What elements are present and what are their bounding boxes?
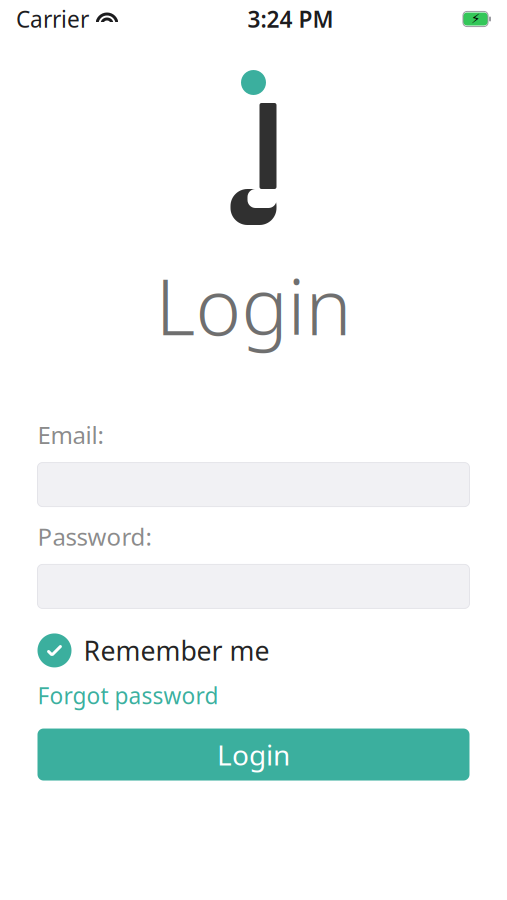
- staticText: Carrier: [16, 4, 89, 34]
- staticText: Login: [217, 736, 290, 773]
- staticText: Password:: [37, 521, 151, 552]
- staticText: Forgot password: [37, 680, 218, 710]
- button[interactable]: Forgot password: [37, 676, 218, 714]
- staticText: ⚡︎: [471, 11, 480, 26]
- staticText: 3:24 PM: [247, 4, 333, 34]
- button[interactable]: Login: [37, 728, 469, 780]
- staticText: Login: [155, 254, 351, 357]
- button[interactable]: Remember me: [37, 630, 469, 670]
- staticText: Remember me: [83, 633, 269, 668]
- staticText: Email:: [37, 419, 103, 451]
